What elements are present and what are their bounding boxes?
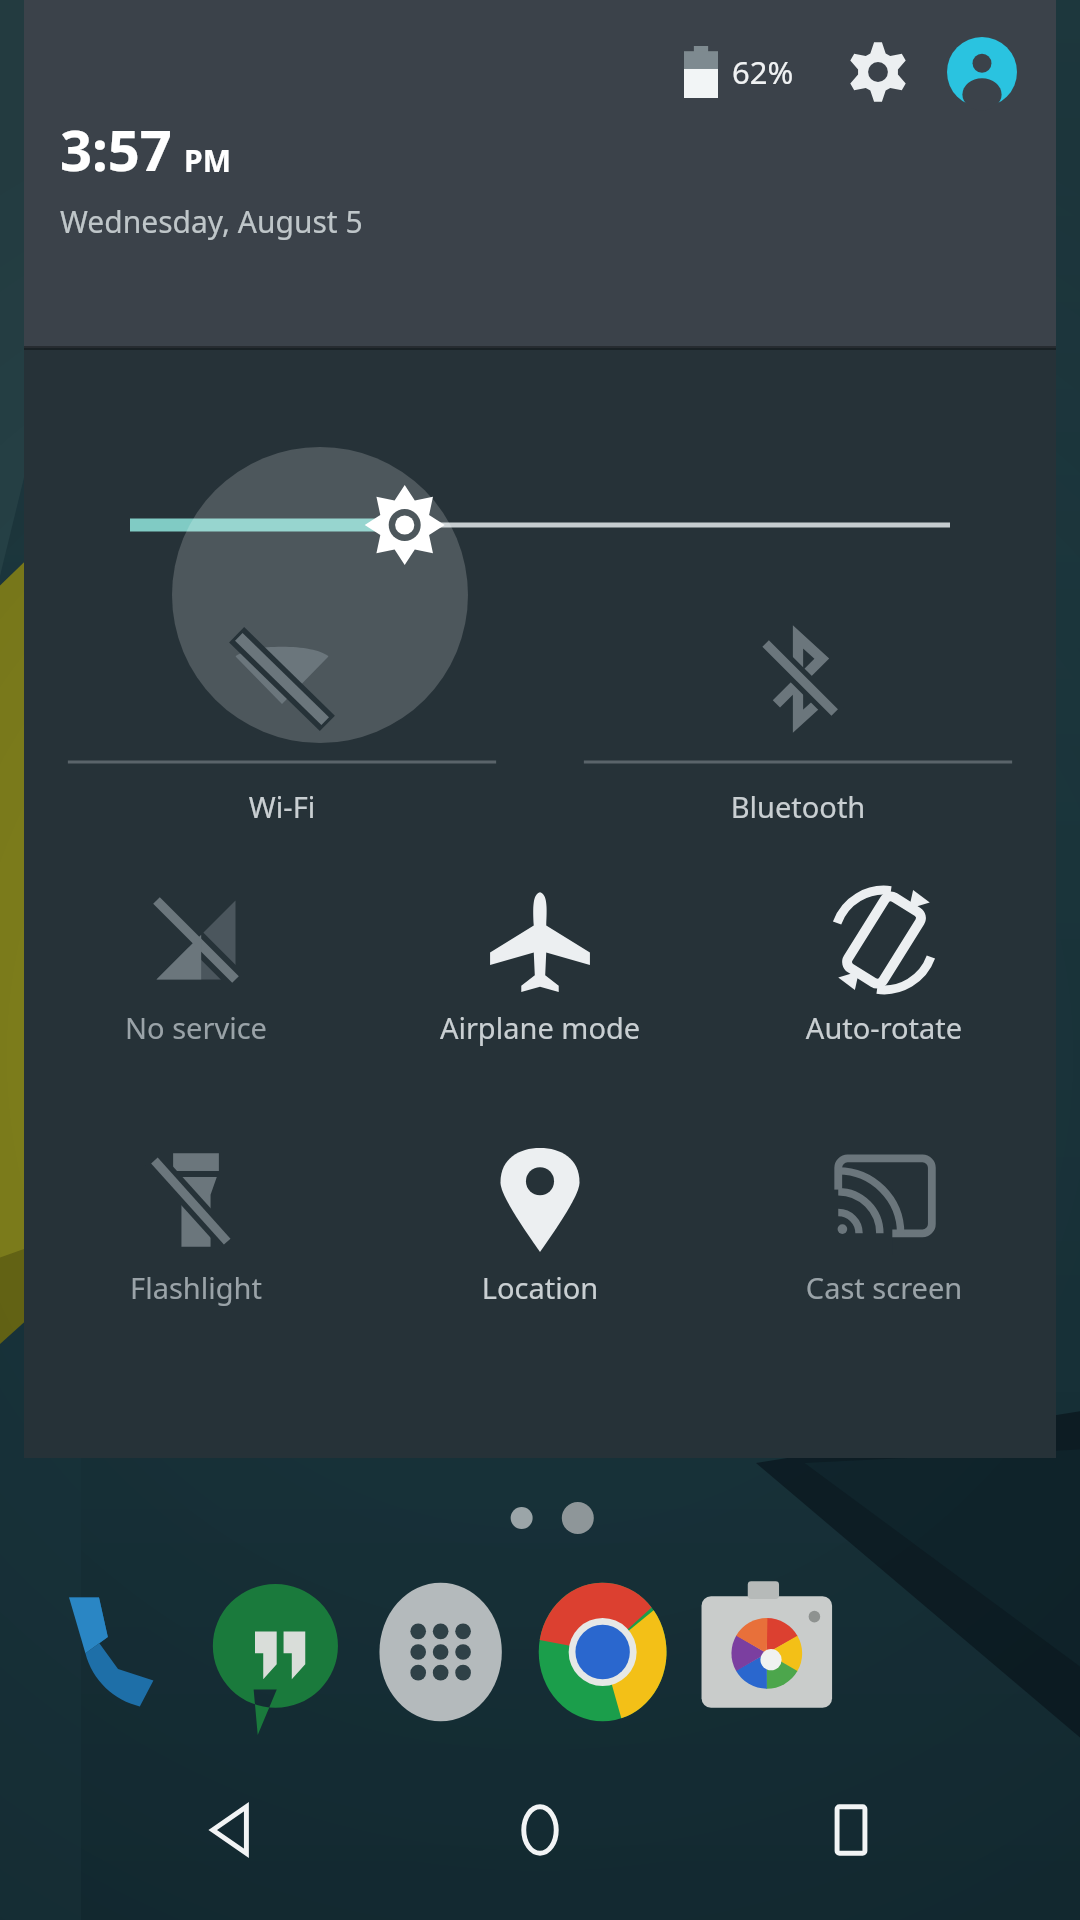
staticText: Airplane mode [368, 1008, 712, 1047]
button[interactable]: Brightness [24, 470, 1056, 580]
button[interactable]: Cast screen [712, 1108, 1056, 1368]
button[interactable]: No service [24, 848, 368, 1108]
button[interactable]: Settings [840, 34, 916, 110]
staticText: PM [184, 140, 231, 181]
button[interactable]: Auto-rotate [712, 848, 1056, 1108]
staticText: Bluetooth [540, 787, 1056, 826]
staticText: Flashlight [24, 1268, 368, 1307]
staticText: Wi-Fi [24, 787, 540, 826]
button[interactable]: Wi-Fi [24, 572, 540, 852]
staticText: 3:57 [60, 111, 172, 187]
button[interactable]: Flashlight [24, 1108, 368, 1368]
button[interactable]: Location [368, 1108, 712, 1368]
staticText: Location [368, 1268, 712, 1307]
staticText: Auto-rotate [712, 1008, 1056, 1047]
button[interactable]: Recent apps [791, 1770, 911, 1890]
staticText: 62% [732, 51, 794, 93]
button[interactable]: Home [480, 1770, 600, 1890]
button[interactable]: User profile [944, 34, 1020, 110]
button[interactable]: Airplane mode [368, 848, 712, 1108]
staticText: Cast screen [712, 1268, 1056, 1307]
staticText: Wednesday, August 5 [60, 201, 363, 242]
staticText: No service [24, 1008, 368, 1047]
button[interactable]: Bluetooth [540, 572, 1056, 852]
button[interactable]: Back [169, 1770, 289, 1890]
